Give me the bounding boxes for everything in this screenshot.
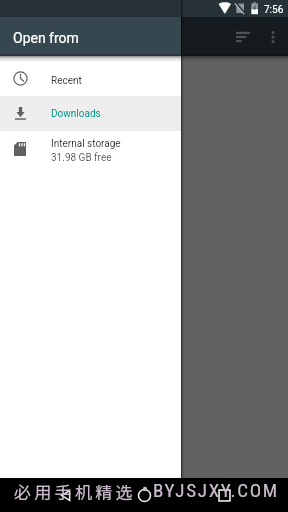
button[interactable]: Recent: [0, 61, 181, 96]
staticText: Open from: [13, 30, 79, 46]
button[interactable]: Sort: [226, 17, 259, 56]
staticText: Internal storage: [51, 138, 121, 150]
button[interactable]: More options: [256, 17, 288, 56]
button[interactable]: Recents: [210, 481, 239, 510]
staticText: 7:56: [264, 4, 284, 16]
staticText: BYJSJXY.COM: [153, 479, 279, 501]
button[interactable]: Downloads: [0, 96, 181, 131]
staticText: Recent: [51, 75, 82, 87]
staticText: 31.98 GB free: [51, 152, 112, 164]
button[interactable]: Back: [51, 481, 79, 509]
staticText: 必用手机精选: [14, 479, 136, 504]
button[interactable]: Home: [130, 481, 159, 510]
staticText: Downloads: [51, 108, 101, 120]
button[interactable]: Internal storage: [0, 131, 181, 173]
